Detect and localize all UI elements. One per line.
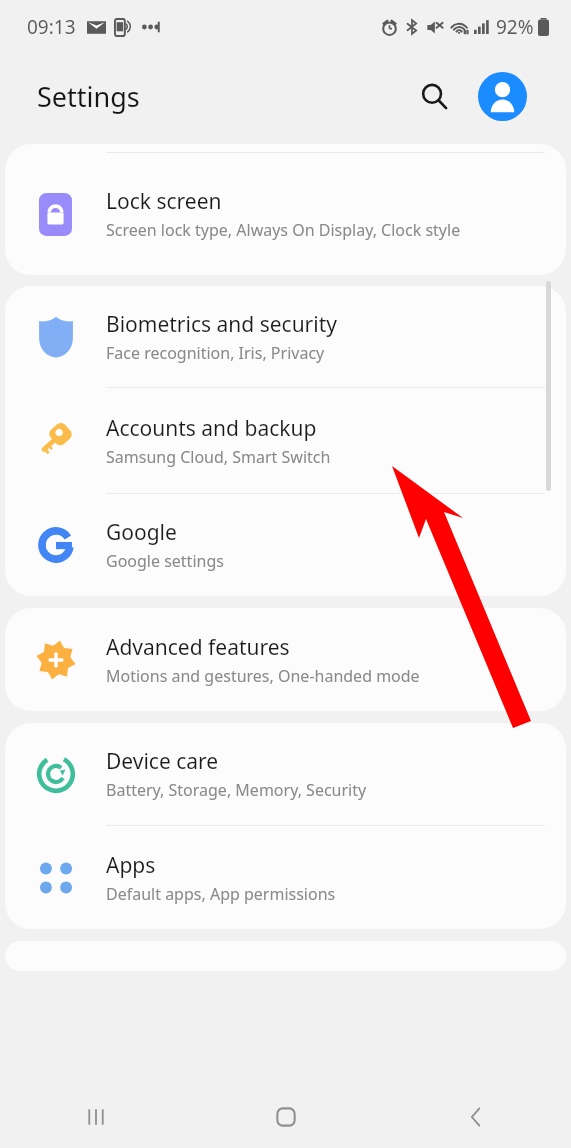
button[interactable]: Advanced features [5,608,566,711]
staticText: Default apps, App permissions [106,883,336,905]
staticText: Google [106,518,177,547]
button[interactable]: Back [381,1086,571,1148]
button[interactable]: Account [478,72,527,121]
staticText: 09:13 [27,14,76,40]
button[interactable]: Biometrics and security [5,286,566,387]
staticText: Lock screen [106,187,222,216]
button[interactable]: Home [191,1086,381,1148]
button[interactable]: Search [411,73,457,119]
staticText: Device care [106,747,219,776]
staticText: Accounts and backup [106,414,317,443]
staticText: Apps [106,851,156,880]
button[interactable]: Lock screen [5,153,566,275]
staticText: Battery, Storage, Memory, Security [106,779,367,801]
staticText: Face recognition, Iris, Privacy [106,342,325,364]
staticText: 92% [496,14,534,40]
staticText: Settings [37,78,140,115]
button[interactable]: Google [5,494,566,596]
staticText: Samsung Cloud, Smart Switch [106,446,331,468]
staticText: Motions and gestures, One-handed mode [106,665,420,687]
staticText: Advanced features [106,633,290,662]
button[interactable]: Accounts and backup [5,388,566,493]
staticText: Biometrics and security [106,310,337,339]
button[interactable]: Recents [0,1086,191,1148]
staticText: Google settings [106,550,224,572]
staticText: Screen lock type, Always On Display, Clo… [106,219,461,241]
button[interactable]: Apps [5,826,566,929]
button[interactable]: Device care [5,723,566,825]
